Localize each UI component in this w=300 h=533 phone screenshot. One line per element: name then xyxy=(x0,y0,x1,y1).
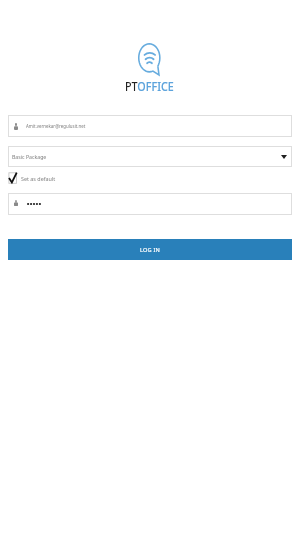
button[interactable] xyxy=(8,193,292,215)
staticText: Set as default xyxy=(21,175,56,182)
button[interactable]: LOG IN xyxy=(8,239,292,260)
staticText: Amit.vernekar@regulusit.net xyxy=(26,123,86,129)
staticText: PTOFFICE xyxy=(125,78,174,95)
other: Open package list xyxy=(281,155,287,159)
button[interactable]: Set as default xyxy=(8,170,56,186)
staticText: Basic Package xyxy=(12,153,47,160)
button[interactable]: Basic Package xyxy=(8,146,292,167)
button[interactable]: Amit.vernekar@regulusit.net xyxy=(8,115,292,137)
staticText: LOG IN xyxy=(140,246,161,254)
